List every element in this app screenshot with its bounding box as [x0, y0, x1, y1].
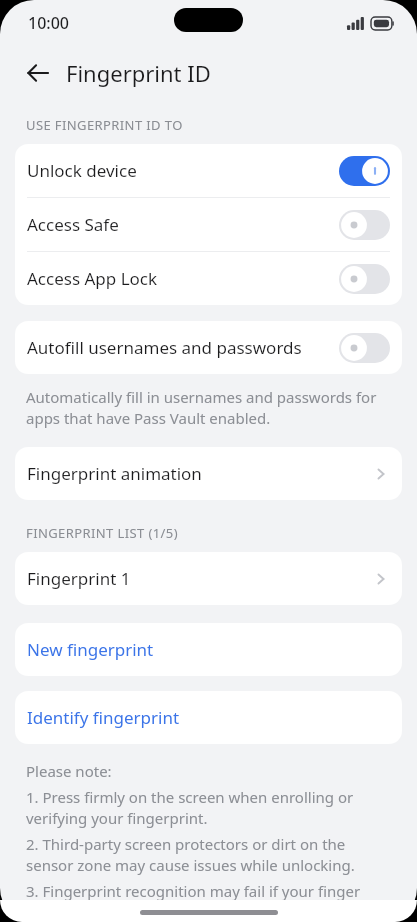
staticText: Automatically fill in usernames and pass…	[26, 387, 393, 429]
staticText: USE FINGERPRINT ID TO	[26, 116, 183, 134]
staticText: Please note:	[26, 761, 112, 781]
staticText: Access Safe	[27, 213, 339, 236]
button[interactable]: Fingerprint animation	[15, 447, 402, 500]
button[interactable]: Back	[14, 49, 62, 97]
button[interactable]: Unlock device	[15, 144, 402, 197]
staticText: New fingerprint	[27, 638, 154, 661]
staticText: Access App Lock	[27, 267, 339, 290]
staticText: 3. Fingerprint recognition may fail if y…	[26, 881, 361, 901]
staticText: Autofill usernames and passwords	[27, 336, 339, 359]
button[interactable]: Access App Lock	[15, 252, 402, 305]
button[interactable]: Identify fingerprint	[15, 691, 402, 744]
staticText: 2. Third-party screen protectors or dirt…	[26, 834, 395, 876]
button[interactable]: New fingerprint	[15, 623, 402, 676]
staticText: 1. Press firmly on the screen when enrol…	[26, 787, 395, 829]
staticText: FINGERPRINT LIST (1/5)	[26, 524, 178, 542]
button[interactable]: Autofill usernames and passwords	[15, 321, 402, 374]
staticText: Identify fingerprint	[27, 706, 180, 729]
staticText: Fingerprint 1	[27, 567, 372, 590]
staticText: Unlock device	[27, 159, 339, 182]
button[interactable]: Access Safe	[15, 198, 402, 251]
button[interactable]: Fingerprint 1	[15, 552, 402, 605]
staticText: Fingerprint animation	[27, 462, 372, 485]
staticText: Fingerprint ID	[66, 58, 211, 88]
staticText: 10:00	[28, 12, 69, 34]
